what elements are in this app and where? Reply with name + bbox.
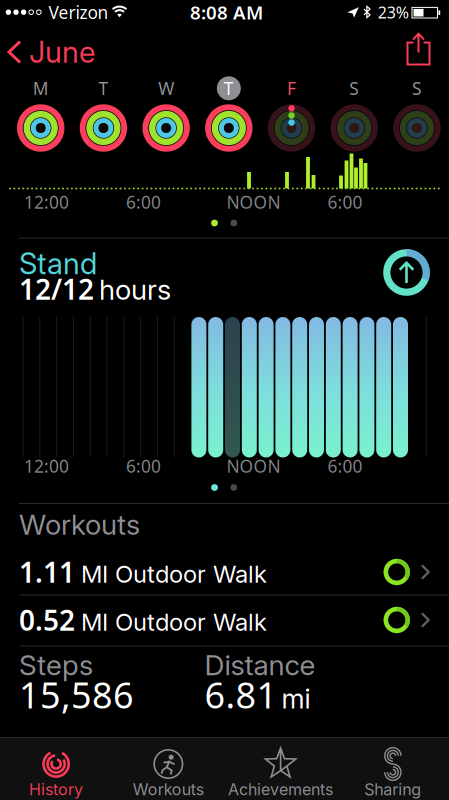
staticText: 0.52 <box>19 601 75 639</box>
button[interactable]: M <box>9 75 72 153</box>
staticText: S <box>349 77 359 100</box>
staticText: 12/12 <box>19 270 94 308</box>
button[interactable]: T <box>72 75 135 153</box>
staticText: 6:00 <box>126 190 161 213</box>
staticText: 23% <box>378 2 409 23</box>
button[interactable]: S <box>323 75 386 153</box>
staticText: 15,586 <box>19 671 134 718</box>
staticText: T <box>98 77 108 100</box>
button[interactable]: S <box>386 75 448 153</box>
staticText: Distance <box>204 648 315 682</box>
button[interactable]: W <box>135 75 197 153</box>
staticText: S <box>412 77 422 100</box>
staticText: Steps <box>19 648 93 682</box>
staticText: 6:00 <box>327 190 362 213</box>
staticText: History <box>29 780 83 799</box>
staticText: Achievements <box>228 780 333 799</box>
staticText: 6:00 <box>327 454 362 477</box>
staticText: Sharing <box>364 780 421 799</box>
button[interactable]: Achievements <box>224 737 337 800</box>
button[interactable]: 0.52 <box>0 593 449 644</box>
button[interactable] <box>406 32 430 65</box>
button[interactable]: T <box>197 75 260 153</box>
staticText: 1.11 <box>19 553 75 591</box>
button[interactable]: Workouts <box>112 737 224 800</box>
staticText: F <box>287 77 296 100</box>
staticText: W <box>158 77 174 100</box>
staticText: M <box>33 77 49 100</box>
staticText: 8:08 AM <box>190 0 263 25</box>
staticText: MI Outdoor Walk <box>81 560 267 589</box>
staticText: June <box>29 34 95 70</box>
staticText: NOON <box>226 454 280 477</box>
button[interactable]: History <box>0 737 112 800</box>
staticText: 12:00 <box>24 190 69 213</box>
staticText: Stand <box>19 246 97 281</box>
staticText: Verizon <box>48 1 108 24</box>
staticText: Workouts <box>133 780 204 799</box>
staticText: hours <box>99 273 171 307</box>
staticText: mi <box>281 683 310 715</box>
staticText: 6.81 <box>204 671 277 718</box>
staticText: MI Outdoor Walk <box>81 608 267 637</box>
staticText: T <box>224 77 234 100</box>
staticText: Workouts <box>19 508 140 541</box>
button[interactable]: June <box>7 34 95 70</box>
button[interactable]: F <box>260 75 323 153</box>
staticText: 6:00 <box>126 454 161 477</box>
button[interactable]: Sharing <box>337 737 449 800</box>
staticText: NOON <box>226 190 280 213</box>
button[interactable]: 1.11 <box>0 545 449 596</box>
staticText: 12:00 <box>24 454 69 477</box>
